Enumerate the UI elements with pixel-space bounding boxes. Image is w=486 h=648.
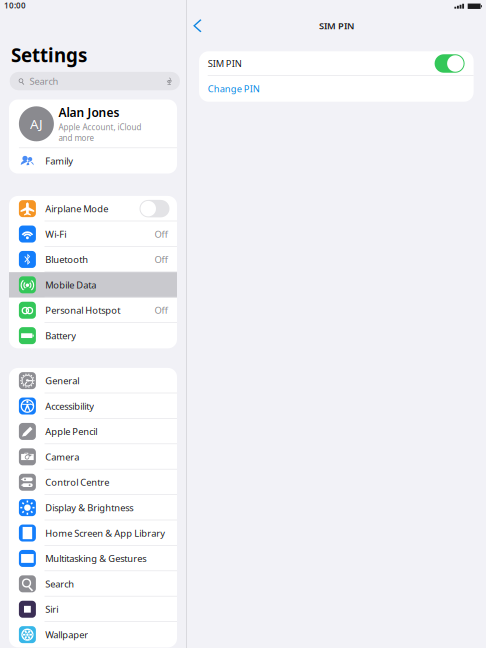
button[interactable]: Family [9,148,177,174]
button[interactable]: Wallpaper [9,622,177,647]
button[interactable]: AJ [9,99,177,148]
button[interactable]: Back [188,15,210,37]
staticText: Siri [45,603,58,615]
staticText: Battery [45,329,76,342]
button[interactable]: Accessibility [9,393,177,419]
button[interactable]: Change PIN [199,76,474,102]
staticText: Alan Jones [59,104,120,120]
staticText: Camera [45,451,79,463]
staticText: Settings [11,42,87,67]
staticText: SIM PIN [319,20,354,32]
staticText: AJ [30,115,43,133]
staticText: Change PIN [208,82,260,95]
staticText: Airplane Mode [45,202,108,215]
button[interactable]: Multitasking & Gestures [9,546,177,571]
staticText: Control Centre [45,476,109,488]
button[interactable]: Control Centre [9,470,177,495]
staticText: Apple Pencil [45,425,97,438]
staticText: Search [45,578,74,590]
staticText: Mobile Data [45,279,96,291]
staticText: General [45,374,79,387]
button[interactable]: Display & Brightness [9,495,177,520]
staticText: Family [45,155,73,167]
staticText: Personal Hotspot [45,304,120,316]
staticText: Bluetooth [45,253,88,266]
button[interactable]: Siri [9,597,177,622]
staticText: Wallpaper [45,628,88,641]
button[interactable]: Wi-Fi [9,221,177,247]
staticText: Multitasking & Gestures [45,552,146,565]
staticText: Apple Account, iCloud [59,122,142,132]
button[interactable]: Search [9,571,177,597]
button[interactable]: Camera [9,444,177,470]
button[interactable]: Battery [9,323,177,348]
staticText: Search [30,75,59,87]
button[interactable]: Search [0,72,186,90]
staticText: Off [154,304,167,316]
button[interactable]: General [9,368,177,393]
button[interactable]: Home Screen & App Library [9,520,177,546]
staticText: SIM PIN [208,57,242,70]
button[interactable]: Apple Pencil [9,419,177,444]
button[interactable]: Bluetooth [9,247,177,272]
staticText: Off [154,253,167,266]
staticText: Display & Brightness [45,501,133,514]
button[interactable]: Mobile Data [9,272,177,297]
staticText: Home Screen & App Library [45,527,165,539]
staticText: Off [154,228,167,240]
staticText: Accessibility [45,400,94,412]
staticText: and more [59,132,95,143]
staticText: Wi-Fi [45,228,66,240]
staticText: 10:00 [4,0,26,11]
button[interactable]: Personal Hotspot [9,298,177,323]
